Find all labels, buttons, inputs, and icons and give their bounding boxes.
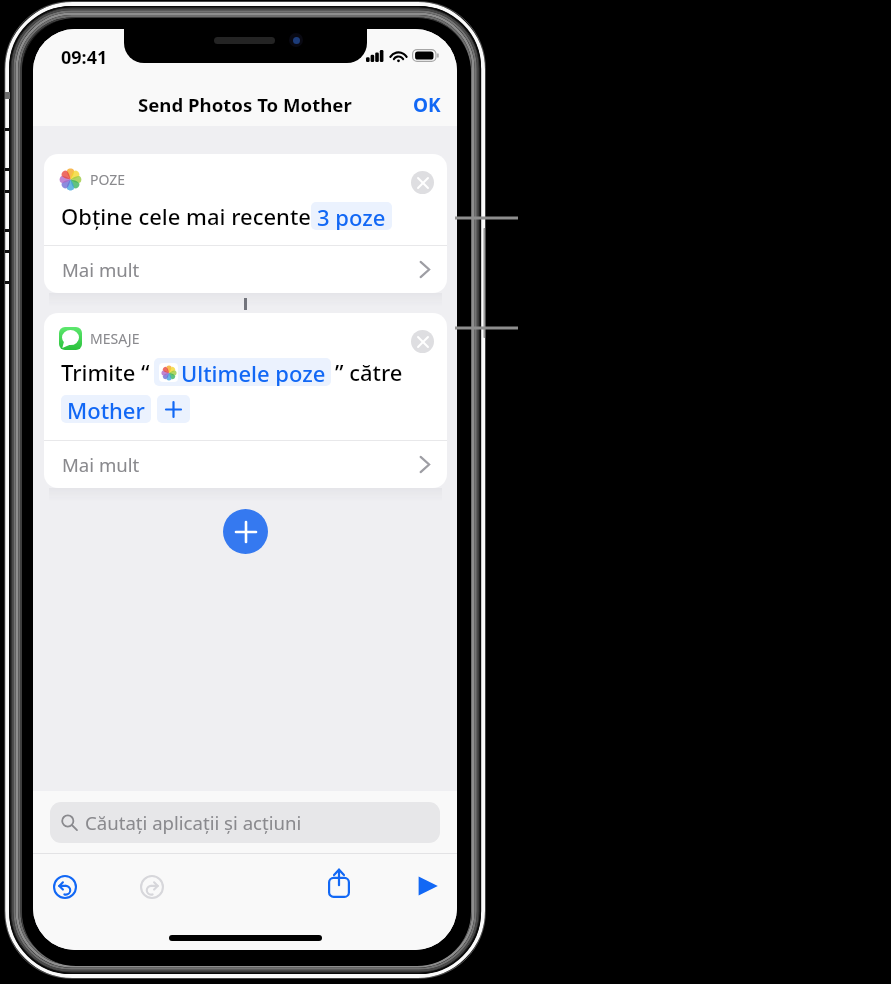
staticText: 3 poze bbox=[317, 202, 386, 230]
button[interactable]: Remove action bbox=[411, 330, 434, 353]
staticText: Căutați aplicații și acțiuni bbox=[85, 810, 302, 835]
button[interactable]: Ultimele poze bbox=[154, 358, 331, 386]
button[interactable]: Redo bbox=[140, 875, 164, 899]
button[interactable]: OK bbox=[397, 84, 457, 126]
button[interactable]: Play bbox=[418, 876, 438, 896]
staticText: Mai mult bbox=[62, 452, 140, 477]
staticText: 09:41 bbox=[61, 45, 108, 70]
button[interactable]: Add recipient bbox=[157, 395, 190, 423]
button[interactable]: Share bbox=[328, 869, 350, 898]
staticText: Obține cele mai recente bbox=[61, 201, 311, 231]
button[interactable]: Căutați aplicații și acțiuni bbox=[50, 802, 440, 843]
staticText: Mai mult bbox=[62, 257, 140, 282]
staticText: Ultimele poze bbox=[181, 358, 326, 386]
button[interactable]: 3 poze bbox=[311, 202, 392, 230]
staticText: MESAJE bbox=[90, 329, 140, 348]
button[interactable]: Remove action bbox=[411, 171, 434, 194]
button[interactable]: Mai mult bbox=[44, 441, 447, 488]
button[interactable]: Undo bbox=[53, 875, 77, 899]
staticText: ” către bbox=[335, 357, 403, 387]
staticText: Trimite “ bbox=[61, 357, 150, 387]
staticText: Send Photos To Mother bbox=[138, 92, 352, 117]
staticText: POZE bbox=[90, 170, 126, 189]
button[interactable]: Add action bbox=[223, 509, 268, 554]
staticText: OK bbox=[413, 92, 441, 118]
button[interactable]: Mai mult bbox=[44, 246, 447, 293]
button[interactable]: Mother bbox=[61, 395, 151, 423]
staticText: Mother bbox=[67, 395, 145, 423]
